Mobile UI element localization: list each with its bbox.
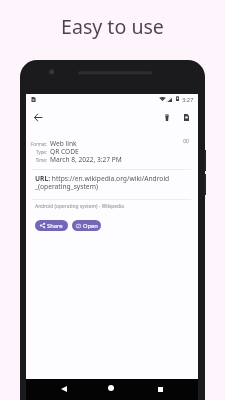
button[interactable]: Back	[29, 108, 47, 126]
staticText: URL: https://en.wikipedia.org/wiki/Andro…	[35, 174, 170, 191]
staticText: Web link	[50, 139, 77, 148]
staticText: 3:27	[182, 96, 194, 104]
staticText: Time:	[0, 157, 47, 163]
button[interactable]: Share	[35, 220, 68, 231]
other: Link	[183, 139, 189, 143]
staticText: March 8, 2022, 3:27 PM	[50, 155, 122, 164]
button[interactable]: Back	[56, 381, 72, 397]
staticText: QR CODE	[50, 147, 79, 156]
staticText: Open	[83, 222, 98, 230]
button[interactable]: Recent apps	[152, 381, 168, 397]
staticText: Format:	[0, 141, 47, 147]
staticText: Share	[47, 222, 63, 230]
staticText: Android (operating system) - Wikipedia	[35, 203, 125, 210]
button[interactable]: Save note	[177, 108, 195, 126]
button[interactable]: Delete	[158, 108, 176, 126]
button[interactable]: Open	[72, 220, 101, 231]
staticText: Type:	[0, 149, 47, 155]
staticText: Easy to use	[61, 13, 164, 40]
button[interactable]: Home	[103, 380, 119, 396]
